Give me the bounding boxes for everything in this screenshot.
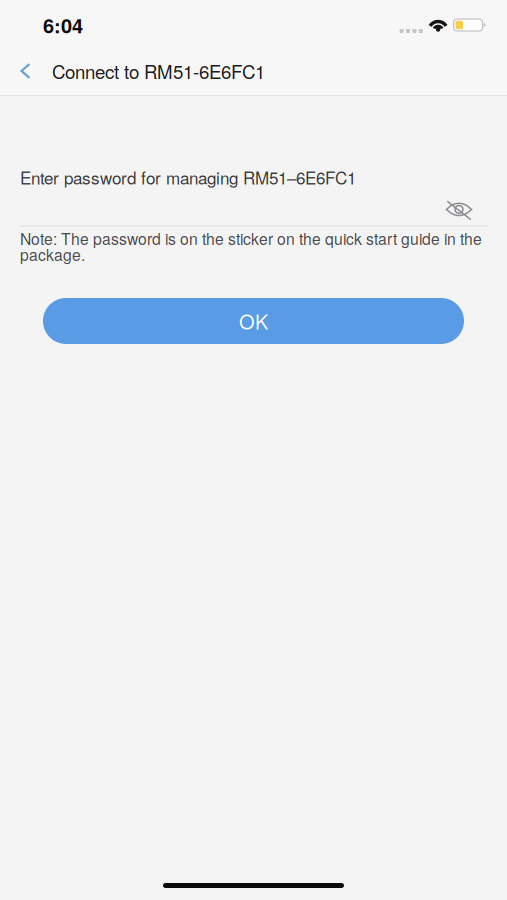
button[interactable]: OK (43, 298, 464, 344)
staticText: Connect to RM51-6E6FC1 (52, 58, 265, 84)
button[interactable]: Show password (437, 197, 481, 223)
staticText: OK (239, 307, 268, 335)
button[interactable]: Back (0, 47, 52, 95)
staticText: 6:04 (43, 11, 83, 39)
staticText: Note: The password is on the sticker on … (20, 230, 482, 262)
staticText: Enter password for managing RM51–6E6FC1 (20, 165, 356, 189)
